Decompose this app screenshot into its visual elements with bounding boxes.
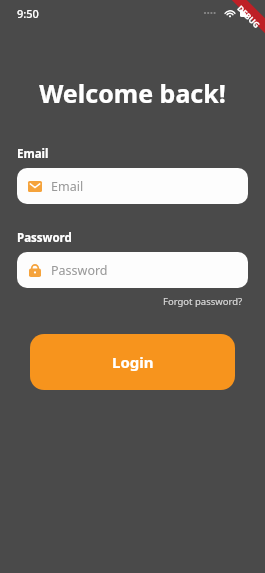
staticText: Login	[112, 352, 154, 372]
staticText: DEBUG	[235, 3, 263, 30]
staticText: Email	[17, 146, 49, 162]
staticText: Password	[17, 230, 72, 246]
staticText: Welcome back!	[0, 76, 265, 110]
button[interactable]: Email	[17, 168, 248, 204]
button[interactable]: Login	[30, 334, 235, 390]
other: Debug banner	[213, 0, 265, 52]
staticText: 9:50	[17, 6, 39, 21]
button[interactable]: Password	[17, 252, 248, 288]
staticText: Email	[51, 178, 84, 195]
button[interactable]: Forgot password?	[163, 293, 265, 310]
staticText: Password	[51, 262, 108, 279]
